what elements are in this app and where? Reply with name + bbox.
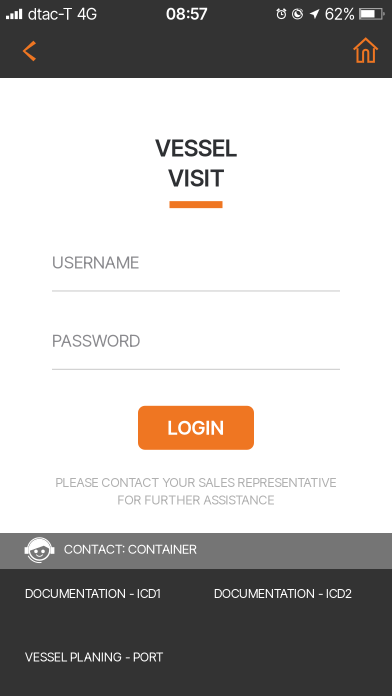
staticText: USERNAME <box>52 252 139 272</box>
button[interactable]: VESSEL PLANING - PORT <box>0 622 392 692</box>
staticText: 62% <box>325 4 355 23</box>
staticText: PASSWORD <box>52 330 140 351</box>
staticText: PLEASE CONTACT YOUR SALES REPRESENTATIVE <box>55 475 336 490</box>
staticText: dtac-T <box>28 4 72 23</box>
staticText: VESSEL <box>155 134 237 162</box>
staticText: 4G <box>77 4 97 23</box>
button[interactable]: CONTACT: CONTAINER <box>0 533 392 569</box>
button[interactable]: DOCUMENTATION - ICD2 <box>190 565 392 622</box>
staticText: VESSEL PLANING - PORT <box>25 649 163 664</box>
staticText: VISIT <box>168 164 224 192</box>
staticText: FOR FURTHER ASSISTANCE <box>117 492 274 507</box>
button[interactable]: DOCUMENTATION - ICD1 <box>0 565 190 622</box>
staticText: 08:57 <box>166 4 207 23</box>
staticText: CONTACT: CONTAINER <box>64 541 197 557</box>
button[interactable]: Back <box>0 28 59 78</box>
staticText: DOCUMENTATION - ICD1 <box>25 586 160 601</box>
button[interactable]: LOGIN <box>138 406 254 450</box>
staticText: LOGIN <box>167 416 224 439</box>
staticText: DOCUMENTATION - ICD2 <box>214 586 352 601</box>
button[interactable]: Home <box>326 28 392 78</box>
